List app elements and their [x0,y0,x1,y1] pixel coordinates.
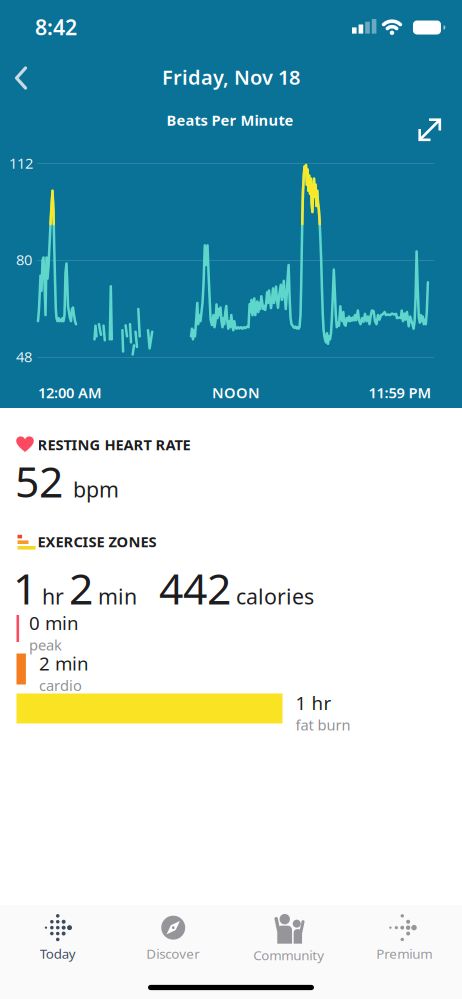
button[interactable]: Back [0,56,43,100]
staticText: hr [42,582,64,610]
staticText: peak [29,635,62,655]
button[interactable]: Discover [115,905,231,971]
staticText: 112 [9,153,33,173]
staticText: 48 [16,347,32,366]
staticText: 1 hr [295,690,331,715]
staticText: 442 [159,560,231,616]
staticText: bpm [73,475,119,503]
staticText: calories [236,582,314,610]
staticText: EXERCISE ZONES [37,532,156,551]
staticText: RESTING HEART RATE [37,435,190,454]
staticText: 11:59 PM [368,383,431,402]
button[interactable]: Expand chart [407,107,451,151]
staticText: 2 min [39,651,89,676]
staticText: fat burn [295,715,350,735]
staticText: Discover [146,945,200,962]
staticText: 52 [15,453,63,509]
button[interactable]: Today [0,905,115,971]
staticText: 80 [16,250,32,269]
staticText: Premium [376,945,432,962]
staticText: 2 [69,560,93,616]
staticText: cardio [39,676,82,695]
staticText: Community [253,946,324,964]
button[interactable]: Premium [346,905,462,971]
staticText: min [98,582,137,610]
staticText: Today [40,945,76,962]
staticText: NOON [212,383,260,402]
staticText: Beats Per Minute [166,110,293,130]
staticText: 12:00 AM [38,383,102,402]
staticText: Friday, Nov 18 [162,64,300,90]
staticText: 1 [13,560,37,616]
staticText: 8:42 [35,13,77,41]
staticText: 0 min [29,610,79,635]
button[interactable]: Community [231,905,346,971]
